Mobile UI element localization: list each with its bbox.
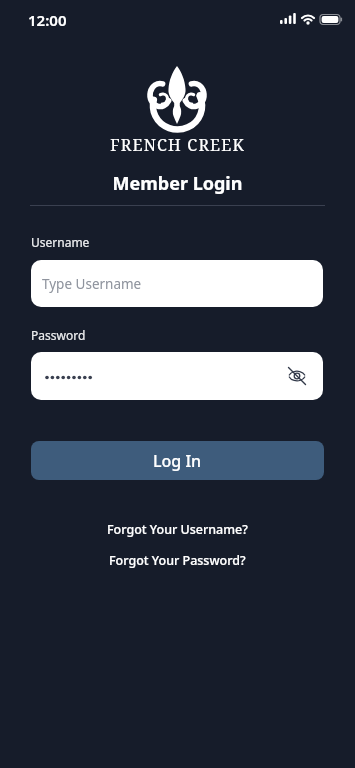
staticText: Password xyxy=(31,327,86,343)
staticText: Member Login xyxy=(0,171,355,196)
staticText: FRENCH CREEK xyxy=(0,134,355,156)
staticText: Log In xyxy=(153,450,202,472)
staticText: Type Username xyxy=(42,275,142,293)
button[interactable]: Log In xyxy=(31,441,324,480)
button[interactable] xyxy=(31,352,323,400)
button[interactable]: Type Username xyxy=(31,260,323,307)
staticText: 12:00 xyxy=(28,10,67,30)
staticText: Username xyxy=(31,234,90,250)
button[interactable]: Forgot Your Username? xyxy=(0,517,355,541)
staticText: Forgot Your Password? xyxy=(109,552,246,569)
staticText: Forgot Your Username? xyxy=(107,521,248,538)
button[interactable]: Forgot Your Password? xyxy=(0,548,355,572)
